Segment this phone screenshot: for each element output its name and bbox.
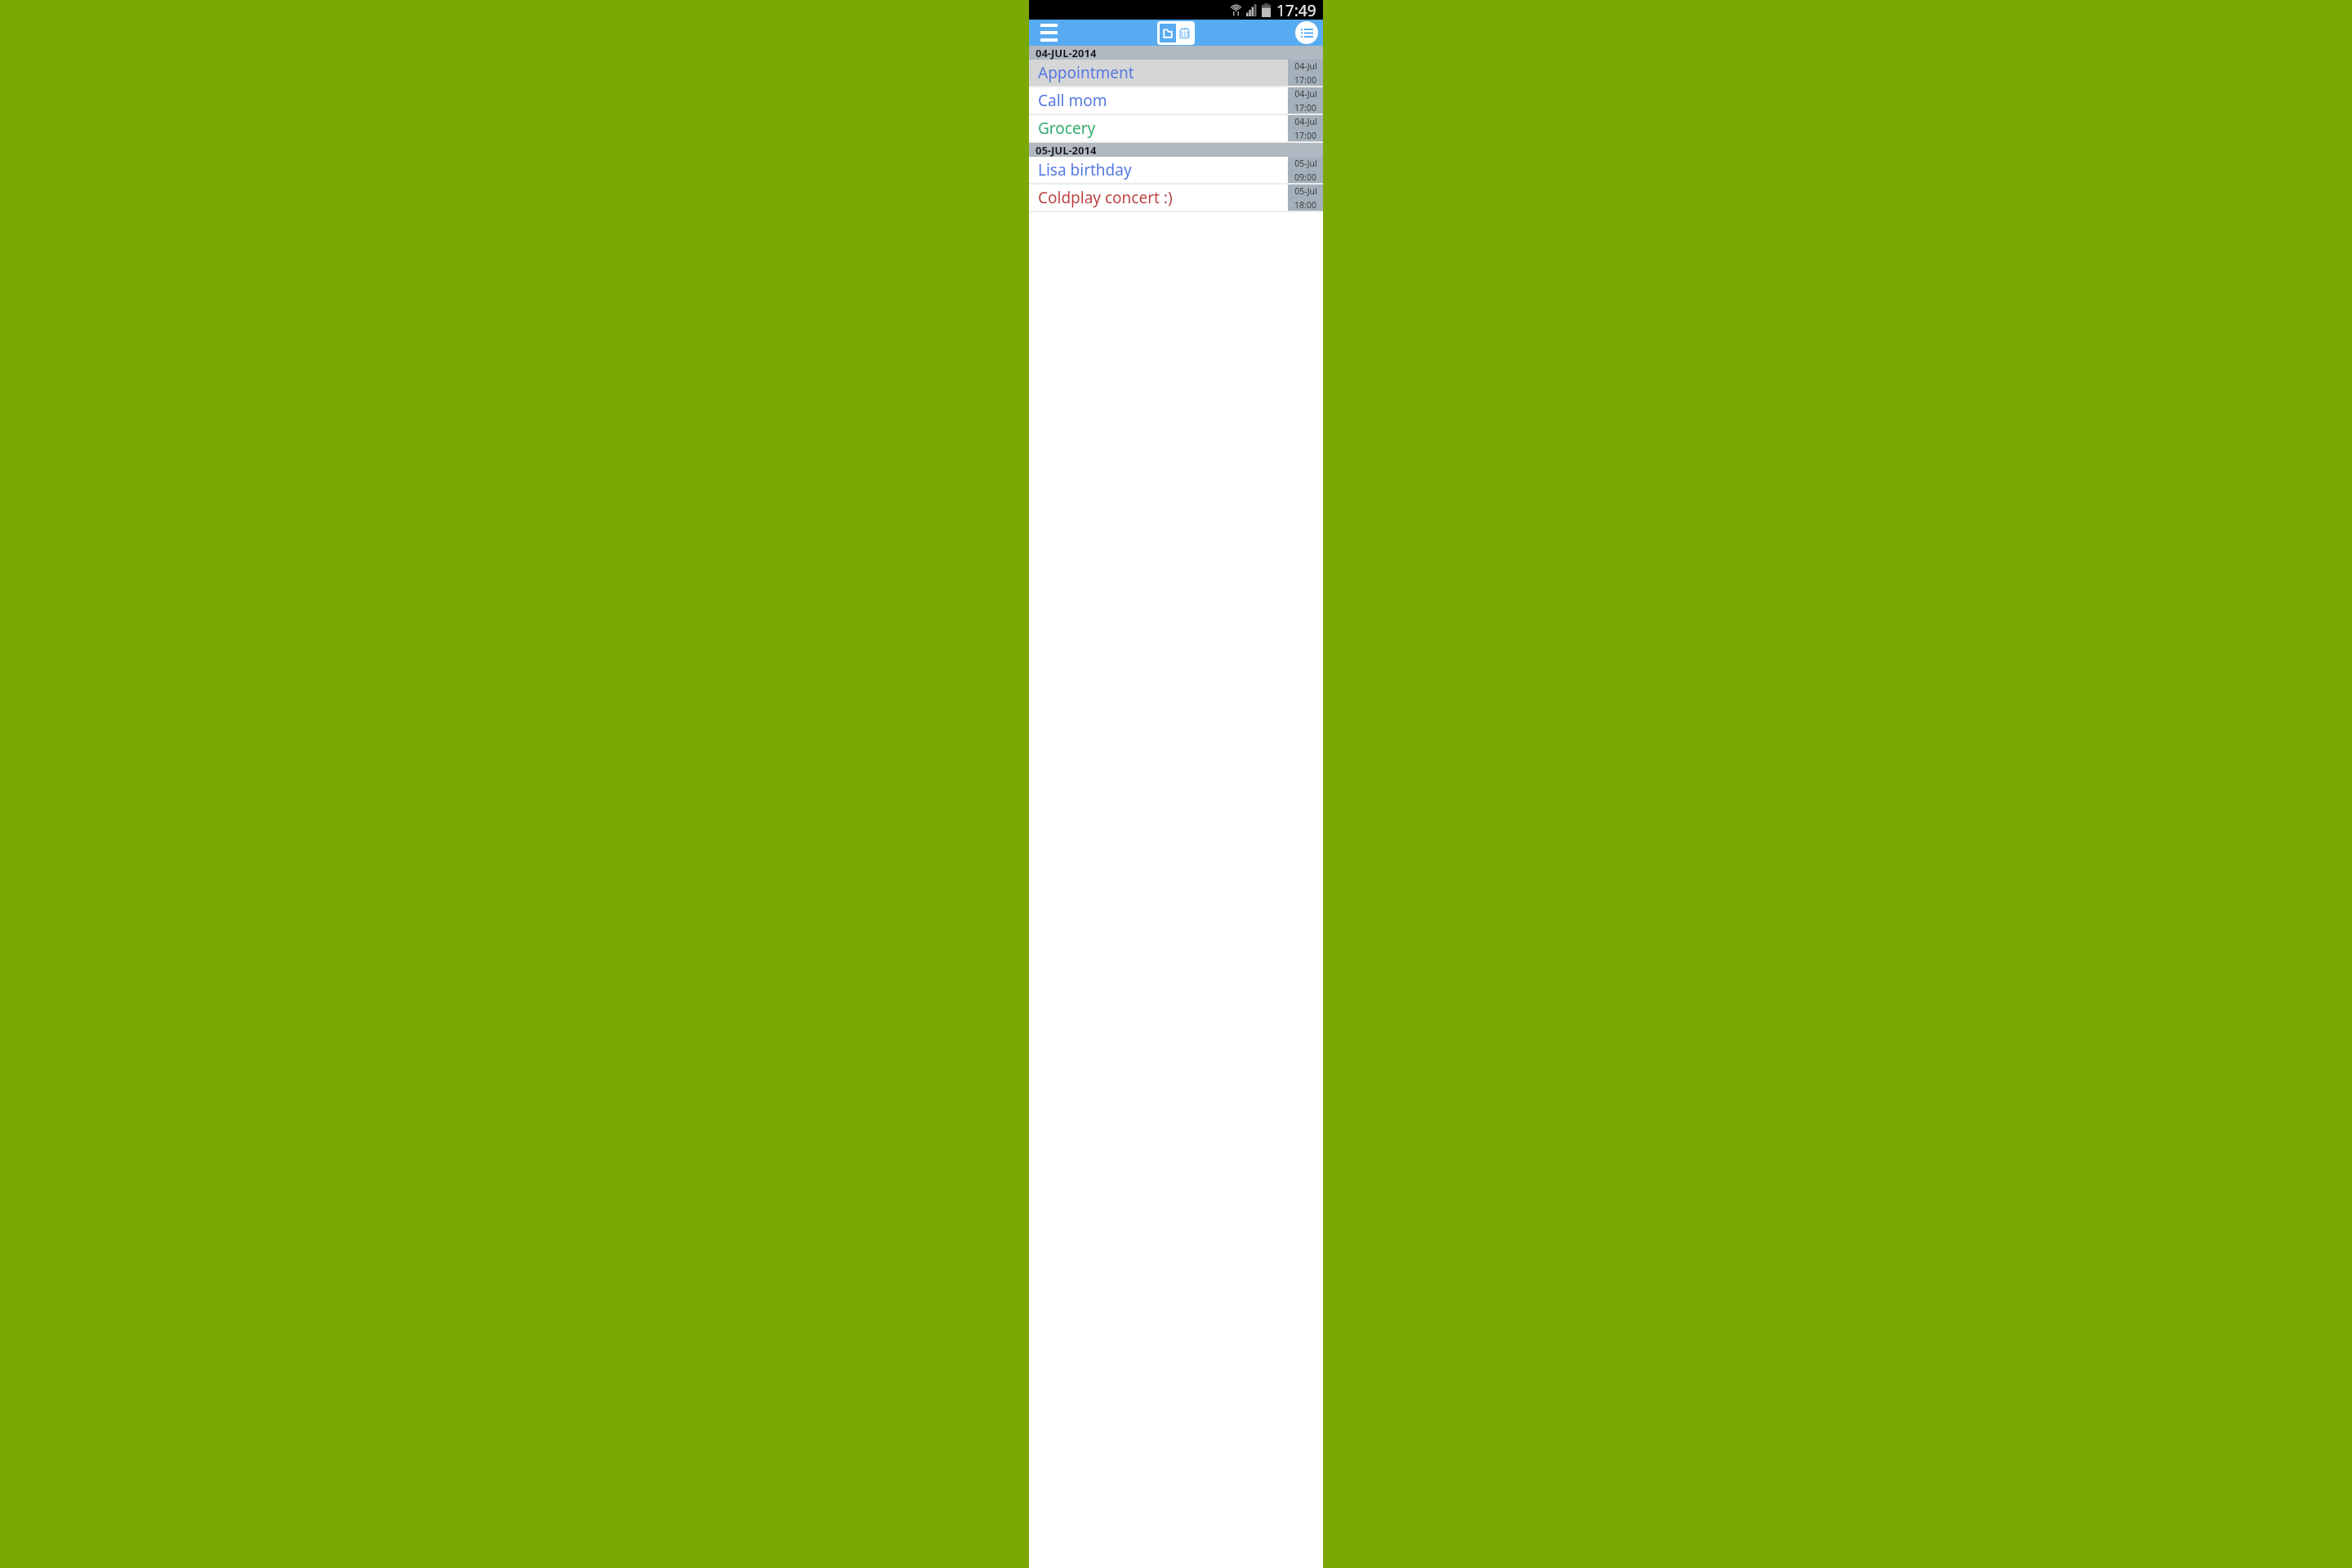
- staticText: 17:00: [1294, 102, 1316, 114]
- staticText: 17:49: [1276, 0, 1316, 20]
- staticText: 17:00: [1294, 74, 1316, 86]
- button[interactable]: Lisa birthday: [1029, 157, 1323, 183]
- staticText: 05-JUL-2014: [1036, 143, 1097, 157]
- staticText: 05-Jul: [1294, 185, 1317, 197]
- button[interactable]: Grocery: [1029, 115, 1323, 141]
- staticText: Lisa birthday: [1038, 159, 1132, 180]
- staticText: 04-Jul: [1294, 116, 1317, 127]
- staticText: Coldplay concert :): [1038, 187, 1173, 208]
- staticText: Appointment: [1038, 62, 1134, 83]
- button[interactable]: Call mom: [1029, 87, 1323, 114]
- staticText: 18:00: [1294, 199, 1316, 211]
- staticText: 17:00: [1294, 130, 1316, 141]
- button[interactable]: Folders: [1160, 24, 1176, 42]
- button[interactable]: Appointment: [1029, 60, 1323, 86]
- staticText: Call mom: [1038, 90, 1107, 111]
- staticText: Grocery: [1038, 118, 1096, 139]
- button[interactable]: Calendar: [1176, 24, 1192, 42]
- button[interactable]: 04-JUL-2014: [1029, 46, 1323, 60]
- button[interactable]: Menu: [1032, 20, 1065, 46]
- staticText: 05-Jul: [1294, 158, 1317, 169]
- button[interactable]: 05-JUL-2014: [1029, 143, 1323, 157]
- staticText: 04-Jul: [1294, 88, 1317, 100]
- button[interactable]: Coldplay concert :): [1029, 185, 1323, 211]
- staticText: 04-Jul: [1294, 60, 1317, 72]
- staticText: 04-JUL-2014: [1036, 46, 1097, 60]
- staticText: 09:00: [1294, 171, 1316, 183]
- button[interactable]: View options: [1295, 21, 1318, 44]
